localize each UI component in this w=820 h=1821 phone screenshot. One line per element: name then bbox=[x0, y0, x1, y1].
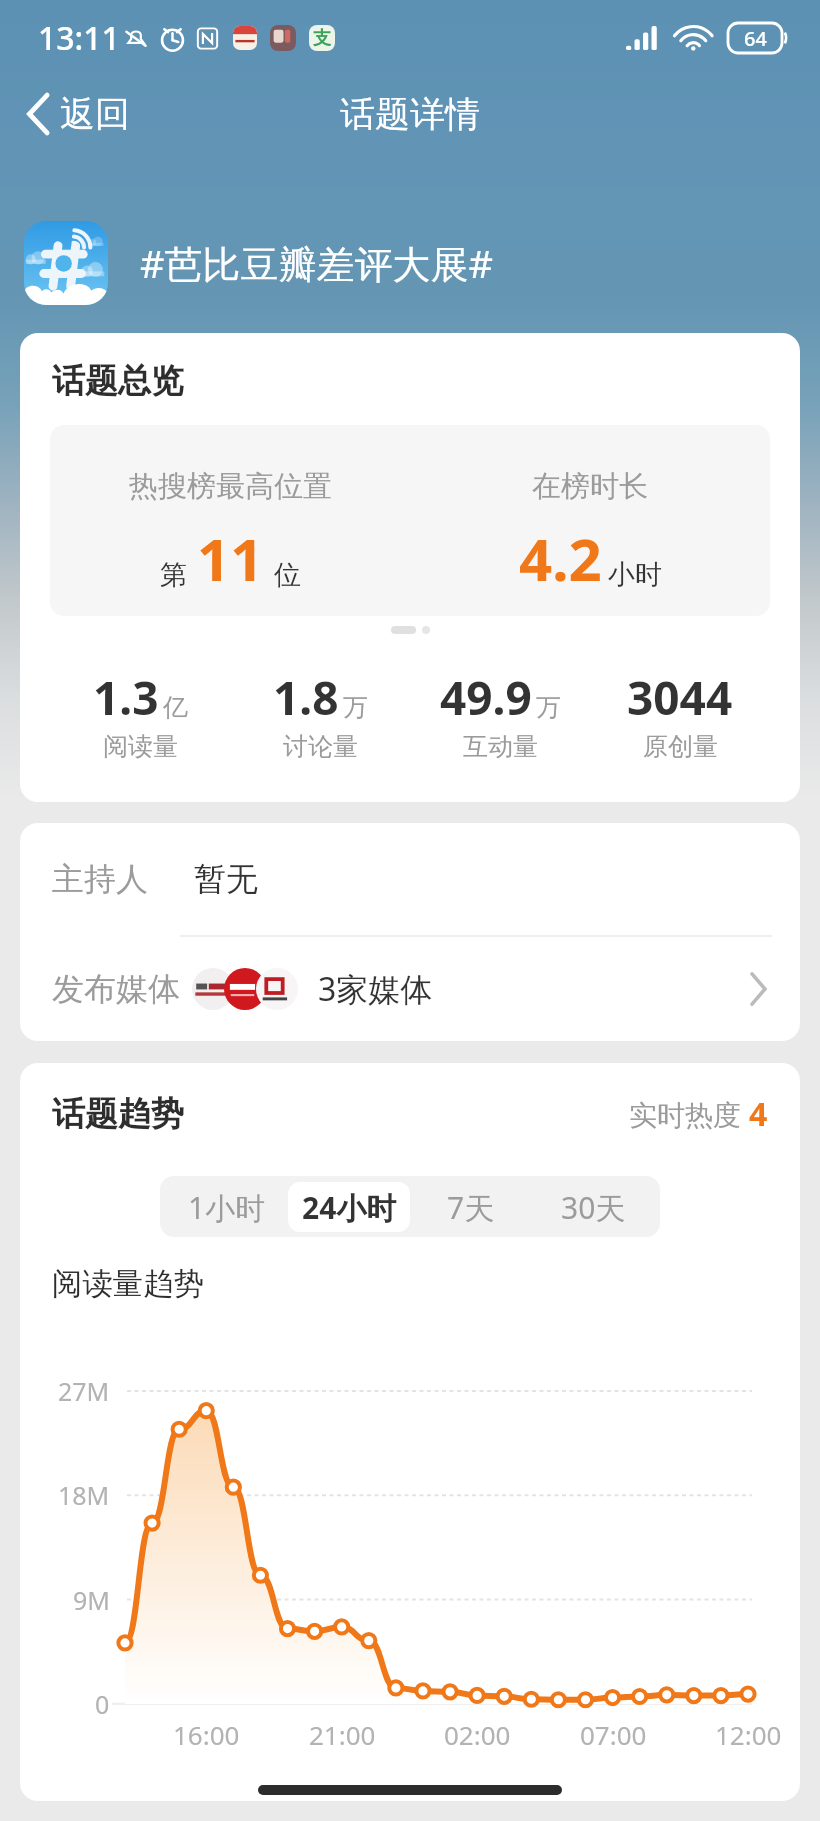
staticText: 主持人 bbox=[52, 859, 148, 899]
staticText: 4.2 bbox=[519, 519, 602, 598]
staticText: 实时热度 bbox=[629, 1095, 749, 1133]
staticText: 27M bbox=[58, 1374, 110, 1408]
staticText: 阅读量 bbox=[103, 731, 178, 762]
staticText: 07:00 bbox=[580, 1717, 647, 1752]
button[interactable]: 30天 bbox=[532, 1182, 654, 1232]
other: 查看发布媒体 bbox=[748, 971, 768, 1007]
staticText: 11 bbox=[197, 519, 264, 598]
staticText: 发布媒体 bbox=[52, 969, 180, 1009]
staticText: 在榜时长 bbox=[532, 468, 648, 505]
staticText: 支 bbox=[313, 27, 331, 50]
staticText: 02:00 bbox=[444, 1717, 511, 1752]
staticText: 小时 bbox=[608, 558, 662, 592]
button[interactable]: 24小时 bbox=[288, 1182, 410, 1232]
button[interactable]: 1小时 bbox=[166, 1182, 288, 1232]
staticText: 话题详情 bbox=[340, 92, 480, 136]
staticText: 话题总览 bbox=[52, 360, 184, 402]
staticText: 24小时 bbox=[302, 1187, 397, 1228]
staticText: 3家媒体 bbox=[318, 967, 433, 1011]
staticText: 18M bbox=[58, 1478, 110, 1512]
staticText: 返回 bbox=[60, 92, 130, 136]
staticText: 讨论量 bbox=[283, 731, 358, 762]
staticText: 9M bbox=[73, 1583, 110, 1617]
staticText: 1小时 bbox=[188, 1187, 266, 1228]
staticText: 64 bbox=[744, 25, 767, 52]
staticText: 第 bbox=[160, 558, 187, 592]
staticText: 3044 bbox=[627, 666, 733, 729]
staticText: 1.3 bbox=[93, 666, 159, 729]
staticText: 位 bbox=[274, 558, 301, 592]
staticText: 阅读量趋势 bbox=[52, 1265, 204, 1303]
staticText: 原创量 bbox=[643, 731, 718, 762]
staticText: 12:00 bbox=[715, 1717, 782, 1752]
staticText: 30天 bbox=[561, 1187, 626, 1228]
staticText: 热搜榜最高位置 bbox=[129, 468, 332, 505]
staticText: 互动量 bbox=[463, 731, 538, 762]
staticText: 4 bbox=[749, 1092, 768, 1136]
staticText: 0 bbox=[95, 1687, 110, 1721]
staticText: 万 bbox=[343, 692, 368, 723]
button[interactable]: 7天 bbox=[410, 1182, 532, 1232]
staticText: 13:11 bbox=[38, 16, 120, 60]
staticText: 21:00 bbox=[309, 1717, 376, 1752]
staticText: 1.8 bbox=[273, 666, 339, 729]
staticText: #芭比豆瓣差评大展# bbox=[140, 237, 494, 289]
staticText: 7天 bbox=[447, 1187, 495, 1228]
staticText: 亿 bbox=[163, 692, 188, 723]
staticText: 49.9 bbox=[440, 666, 532, 729]
staticText: 暂无 bbox=[194, 859, 258, 899]
staticText: 万 bbox=[536, 692, 561, 723]
staticText: 16:00 bbox=[173, 1717, 240, 1752]
button[interactable]: 返回 bbox=[0, 86, 156, 142]
button[interactable]: 发布媒体 bbox=[20, 937, 800, 1041]
staticText: 话题趋势 bbox=[52, 1093, 184, 1135]
